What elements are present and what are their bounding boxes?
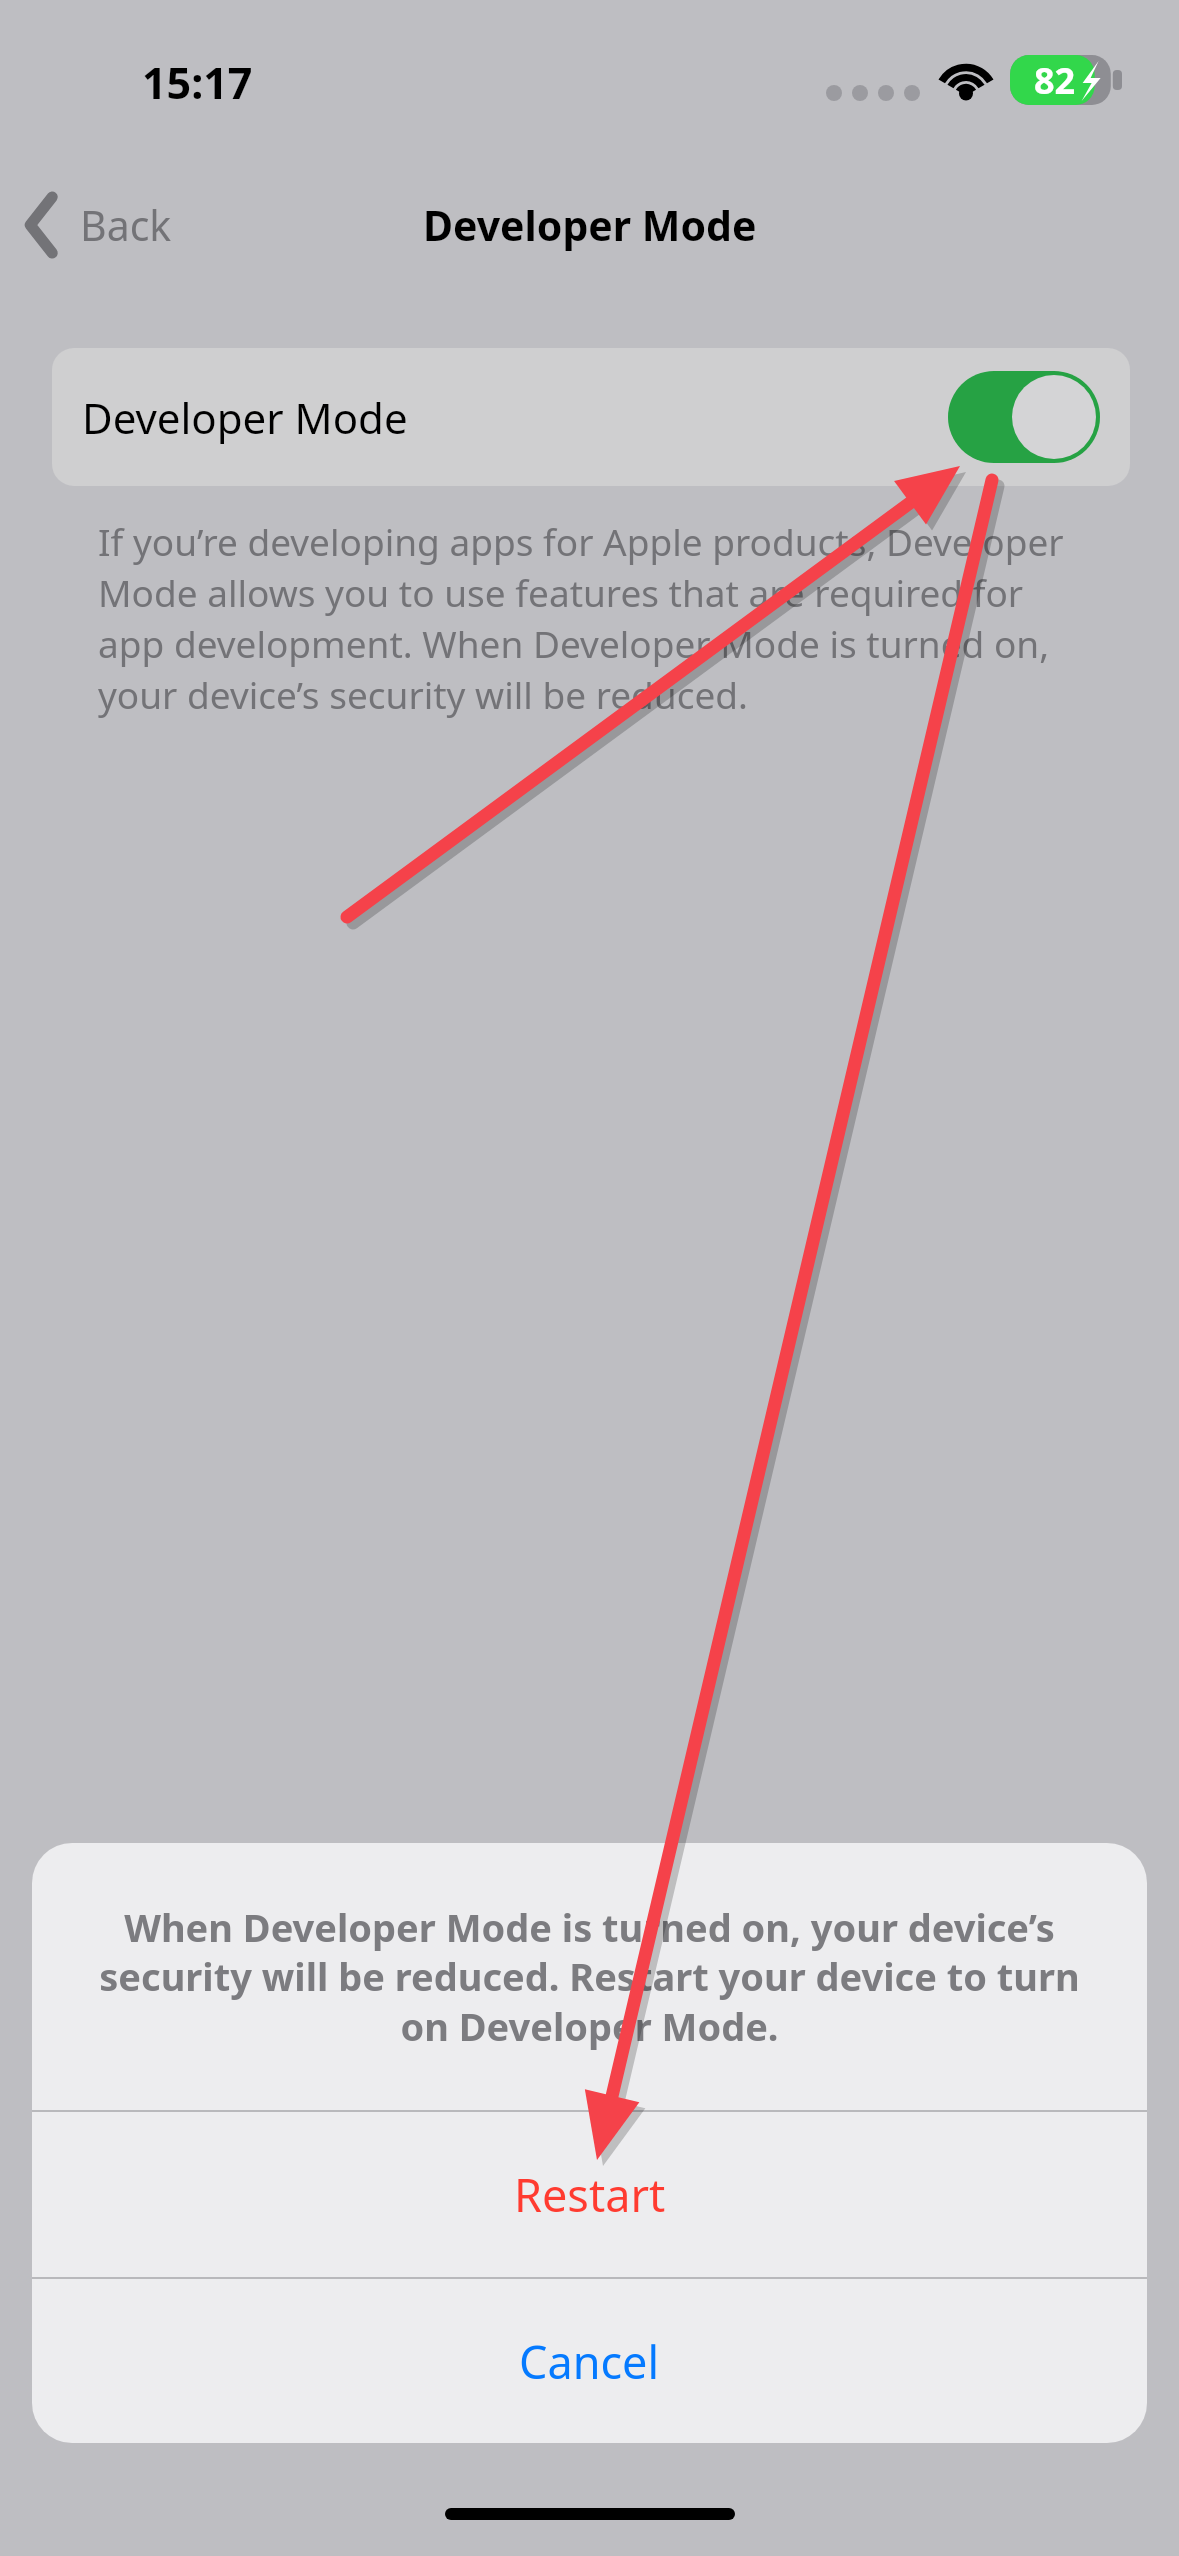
button[interactable]: Developer Mode: [52, 348, 1130, 486]
button[interactable]: Back: [20, 180, 230, 270]
staticText: Developer Mode: [82, 389, 408, 446]
button[interactable]: Developer Mode toggle, on: [948, 371, 1100, 463]
staticText: Cancel: [519, 2331, 660, 2392]
staticText: 15:17: [142, 53, 253, 112]
staticText: 82: [1034, 56, 1076, 105]
staticText: Restart: [514, 2164, 666, 2225]
staticText: Developer Mode: [423, 197, 757, 253]
button[interactable]: Cancel: [32, 2279, 1147, 2443]
staticText: When Developer Mode is turned on, your d…: [88, 1901, 1091, 2052]
staticText: If you’re developing apps for Apple prod…: [98, 516, 1098, 720]
staticText: Back: [80, 197, 172, 253]
button[interactable]: Restart: [32, 2112, 1147, 2277]
